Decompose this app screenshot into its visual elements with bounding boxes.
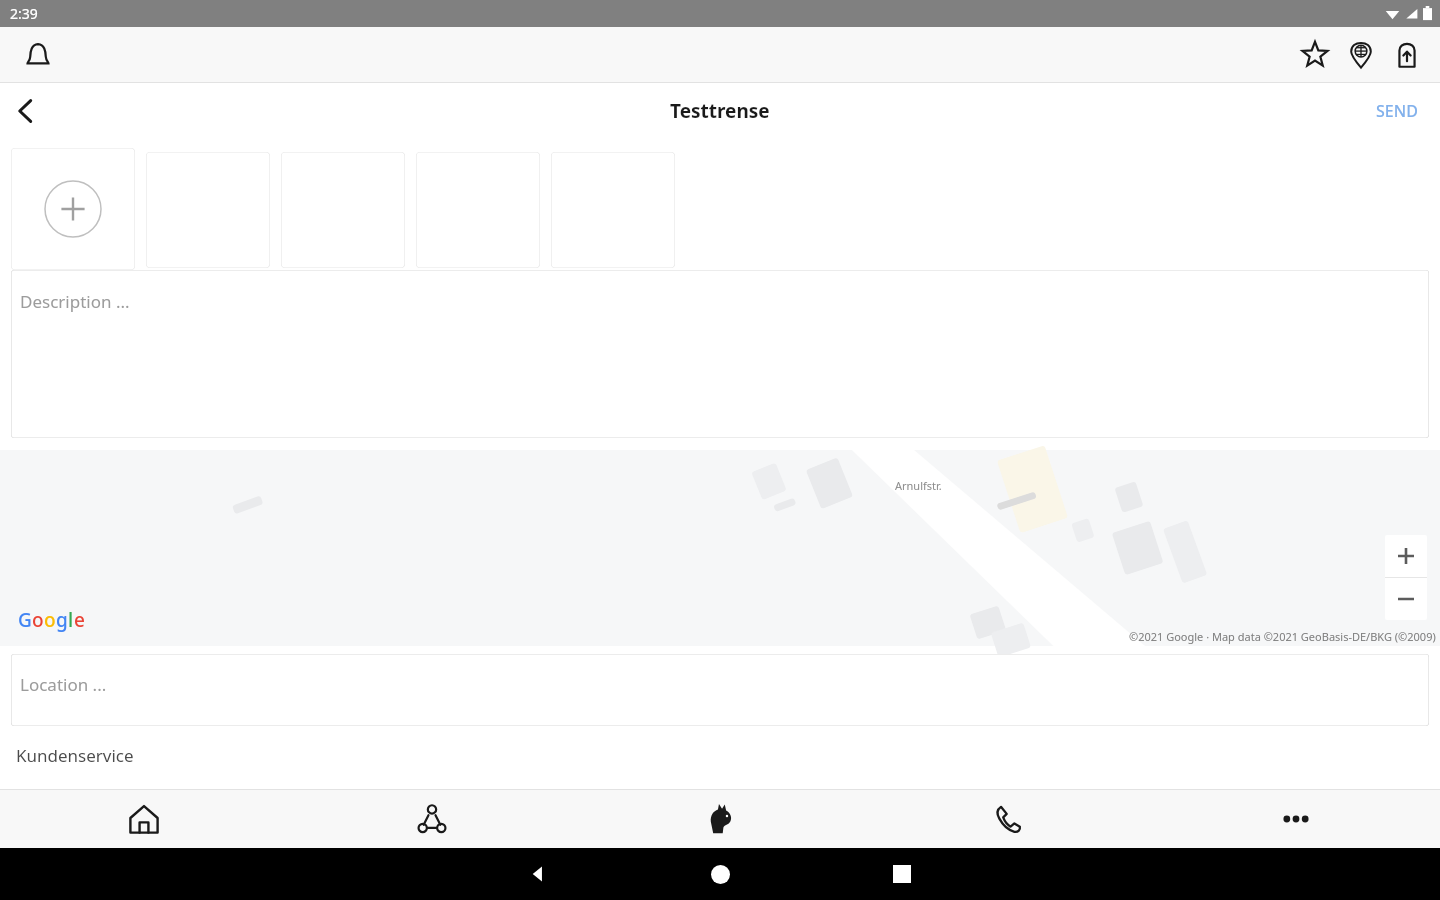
button[interactable]: Back: [2, 87, 50, 135]
button[interactable]: Zoom in: [1385, 535, 1427, 577]
button[interactable]: Horses: [576, 790, 864, 848]
button[interactable]: Notifications: [14, 31, 62, 79]
staticText: o: [32, 607, 44, 633]
button[interactable]: Home: [0, 790, 288, 848]
button[interactable]: Map: [0, 450, 1440, 646]
button[interactable]: Call: [864, 790, 1152, 848]
button[interactable]: Back: [447, 863, 629, 885]
staticText: Description ...: [20, 290, 130, 313]
button[interactable]: Groups: [288, 790, 576, 848]
button[interactable]: SEND: [1362, 88, 1432, 134]
button[interactable]: Favorite: [1292, 32, 1338, 78]
staticText: Location ...: [20, 673, 107, 696]
staticText: G: [18, 607, 32, 633]
staticText: SEND: [1376, 100, 1418, 122]
button[interactable]: Share: [1384, 32, 1430, 78]
button[interactable]: Zoom out: [1385, 578, 1427, 620]
button[interactable]: Add photo: [11, 148, 135, 270]
staticText: o: [44, 607, 56, 633]
staticText: Kundenservice: [16, 744, 134, 767]
staticText: 2:39: [10, 4, 38, 23]
staticText: e: [74, 607, 85, 633]
button[interactable]: Recents: [811, 865, 993, 883]
staticText: Testtrense: [670, 98, 770, 124]
button[interactable]: Location ...: [11, 654, 1429, 726]
button[interactable]: Description ...: [11, 270, 1429, 438]
button[interactable]: Home: [629, 865, 811, 884]
staticText: Arnulfstr.: [895, 478, 942, 493]
staticText: l: [68, 607, 74, 633]
staticText: g: [56, 607, 68, 633]
staticText: ©2021 Google · Map data ©2021 GeoBasis-D…: [1129, 629, 1436, 644]
button[interactable]: More: [1152, 790, 1440, 848]
button[interactable]: Location: [1338, 32, 1384, 78]
